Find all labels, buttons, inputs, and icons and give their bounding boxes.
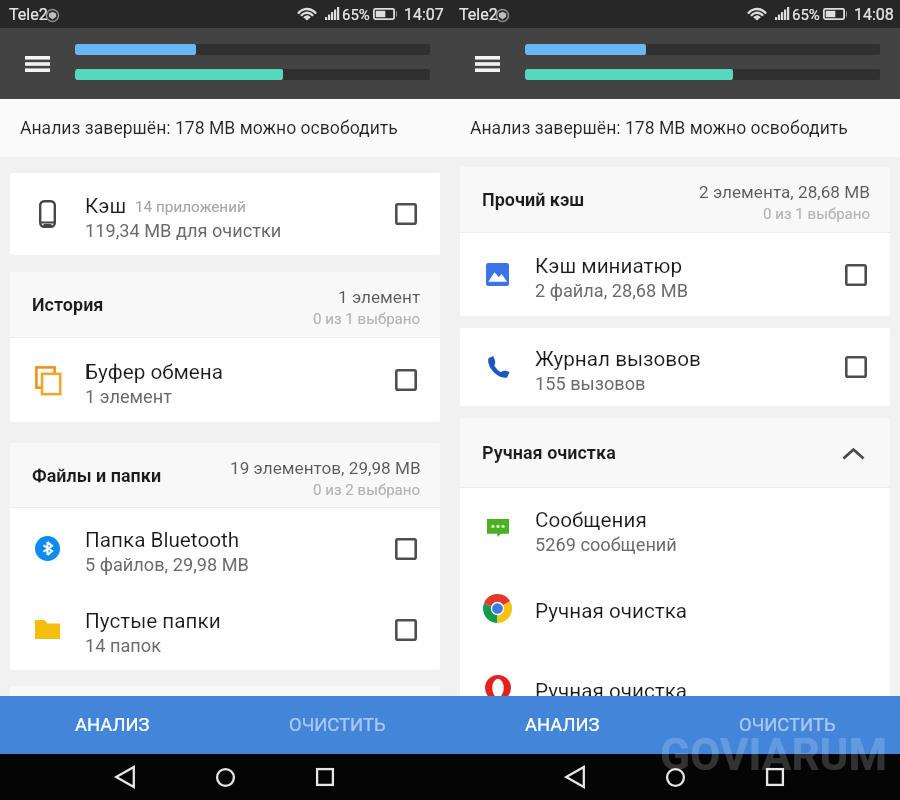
staticText: 119,34 MB для очистки [85,220,282,241]
staticText: Журнал вызовов [535,347,701,371]
button[interactable]: Menu [0,28,75,99]
button[interactable]: Recents [725,754,825,800]
staticText: 14:08 [854,5,894,24]
button[interactable]: Back [75,754,175,800]
staticText: Ручная очистка [482,442,616,463]
button[interactable]: Пустые папки [10,589,440,670]
button[interactable]: ОЧИСТИТЬ [675,696,900,754]
button[interactable]: Menu [450,28,525,99]
button[interactable]: Back [525,754,625,800]
button[interactable]: Select Папка Bluetooth [372,508,440,589]
staticText: Сообщения [535,508,647,532]
staticText: ОЧИСТИТЬ [739,714,836,736]
staticText: Tele2 [459,5,498,24]
staticText: Файлы и папки [32,465,162,486]
staticText: 1 элемент [338,287,421,307]
button[interactable]: Папка Bluetooth [10,508,440,589]
staticText: Ручная очистка [535,679,688,696]
staticText: GOVIARUM [660,729,888,781]
staticText: История [32,294,104,315]
staticText: Анализ завершён: 178 MB можно освободить [20,118,398,139]
button[interactable]: Recents [275,754,375,800]
staticText: 0 из 1 выбрано [313,310,421,328]
staticText: Прочий кэш [482,189,585,210]
staticText: Папка Bluetooth [85,528,240,552]
button[interactable]: Ручная очистка [460,648,890,696]
button[interactable]: Буфер обмена [10,338,440,422]
staticText: Ручная очистка [535,599,688,623]
button[interactable]: ОЧИСТИТЬ [225,696,450,754]
staticText: Буфер обмена [85,360,223,384]
button[interactable]: Select Журнал вызовов [822,328,890,406]
button[interactable]: АНАЛИЗ [450,696,675,754]
staticText: Анализ завершён: 178 MB можно освободить [470,118,848,139]
staticText: 14 папок [85,635,162,656]
staticText: 2 файла, 28,68 MB [535,280,689,301]
staticText: 19 элементов, 29,98 MB [230,458,421,478]
button[interactable]: Select Буфер обмена [372,338,440,422]
button[interactable]: Журнал вызовов [460,328,890,406]
button[interactable]: Ручная очистка [460,568,890,648]
staticText: 65% [342,6,370,24]
staticText: 14:07 [404,5,444,24]
staticText: ОЧИСТИТЬ [289,714,386,736]
staticText: Кэш миниатюр [535,254,682,278]
button[interactable]: Select Кэш миниатюр [822,233,890,316]
button[interactable]: Кэш миниатюр [460,233,890,316]
button[interactable]: АНАЛИЗ [0,696,225,754]
button[interactable]: Home [175,754,275,800]
staticText: Кэш [85,194,127,218]
staticText: Tele2 [9,5,48,24]
button[interactable]: Кэш [10,173,440,255]
staticText: 0 из 1 выбрано [763,205,871,223]
staticText: 2 элемента, 28,68 MB [699,182,871,202]
staticText: 155 вызовов [535,373,646,394]
button[interactable]: Select Кэш [372,173,440,255]
staticText: 0 из 2 выбрано [313,481,421,499]
button[interactable]: Collapse [838,438,868,468]
button[interactable]: Home [625,754,725,800]
button[interactable]: Select Пустые папки [372,589,440,670]
staticText: 1 элемент [85,386,172,407]
staticText: 5269 сообщений [535,534,677,555]
staticText: АНАЛИЗ [75,714,150,736]
staticText: АНАЛИЗ [525,714,600,736]
staticText: 65% [792,6,820,24]
staticText: 5 файлов, 29,98 MB [85,554,249,575]
staticText: 14 приложений [135,198,246,216]
button[interactable]: Сообщения [460,488,890,568]
staticText: Пустые папки [85,609,221,633]
